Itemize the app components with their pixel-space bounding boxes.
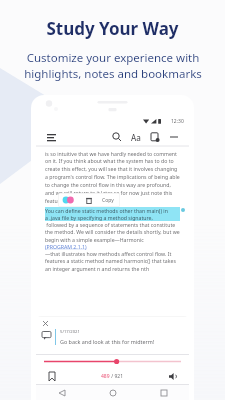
- button[interactable]: Delete: [84, 195, 94, 205]
- staticText: 5/17/2021: [60, 329, 80, 335]
- staticText: (PROGRAM 2.1.1): [45, 243, 87, 250]
- button[interactable]: Close note: [41, 319, 50, 328]
- button[interactable]: Copy: [102, 197, 114, 204]
- staticText: Customize your experience with highlight…: [24, 50, 202, 81]
- button[interactable]: Text size: [128, 129, 144, 145]
- staticText: Aa: [131, 132, 141, 143]
- button[interactable]: Bookmarks: [147, 129, 163, 145]
- button[interactable]: Bookmark: [45, 369, 59, 383]
- staticText: followed by a sequence of statements tha…: [45, 221, 180, 243]
- button[interactable]: Back: [36, 385, 87, 400]
- button[interactable]: Page progress: [44, 355, 181, 368]
- button[interactable]: Read aloud: [166, 369, 180, 383]
- staticText: 489: [101, 373, 110, 380]
- staticText: / 921: [110, 373, 124, 380]
- staticText: Go back and look at this for midterm!: [60, 338, 155, 345]
- button[interactable]: Menu: [43, 129, 59, 145]
- staticText: —that illustrates how methods affect con…: [45, 250, 180, 272]
- staticText: Study Your Way: [46, 17, 179, 40]
- button[interactable]: Highlight color: [62, 195, 78, 205]
- staticText: is so intuitive that we have hardly need…: [45, 150, 180, 204]
- button[interactable]: More: [166, 129, 182, 145]
- staticText: Copy: [102, 197, 114, 204]
- staticText: You can define static methods other than…: [45, 207, 180, 221]
- button[interactable]: Search: [109, 129, 125, 145]
- button[interactable]: Recent apps: [138, 385, 189, 400]
- staticText: 12:30: [171, 118, 184, 125]
- button[interactable]: Home: [87, 385, 138, 400]
